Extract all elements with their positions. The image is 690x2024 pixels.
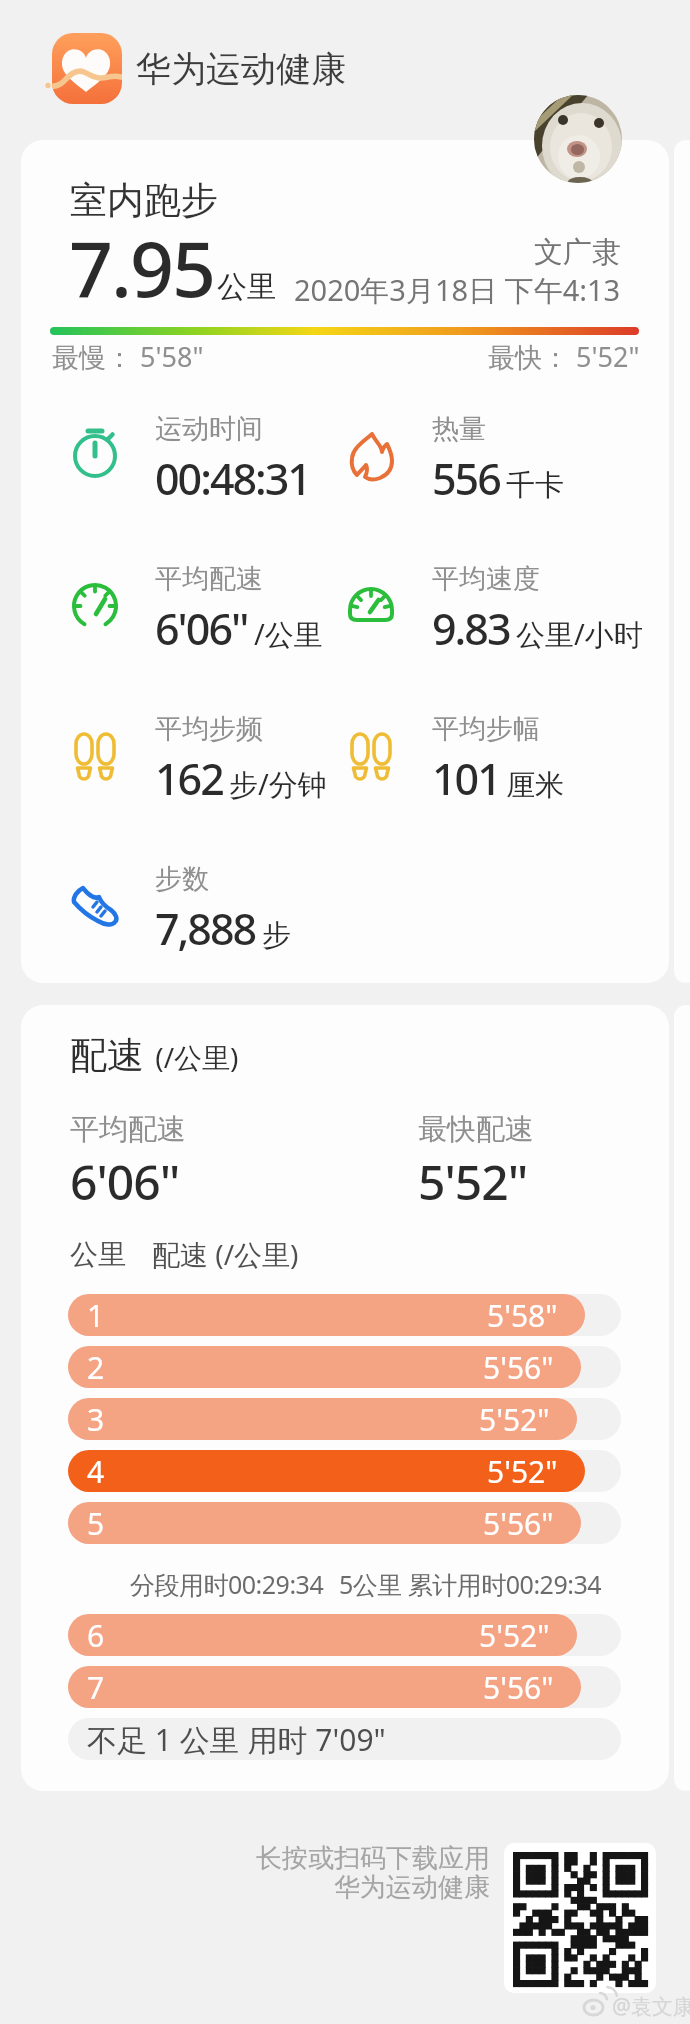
staticText: 配速 bbox=[70, 1032, 144, 1078]
staticText: 平均配速 bbox=[155, 562, 263, 596]
staticText: 最快： 5'52" bbox=[488, 338, 640, 375]
staticText: 5'52" bbox=[418, 1149, 528, 1214]
staticText: 5'58" bbox=[487, 1295, 558, 1336]
staticText: 6 bbox=[87, 1615, 105, 1656]
staticText: 平均配速 bbox=[70, 1111, 186, 1148]
staticText: 2 bbox=[87, 1347, 105, 1388]
button[interactable] bbox=[68, 1718, 621, 1760]
staticText: 平均速度 bbox=[432, 562, 540, 596]
staticText: 华为运动健康 bbox=[334, 1871, 490, 1904]
staticText: 公里/小时 bbox=[516, 614, 643, 654]
staticText: 公里 bbox=[70, 1237, 126, 1272]
button[interactable]: 5'52" bbox=[68, 1450, 585, 1492]
staticText: 室内跑步 bbox=[70, 177, 218, 224]
staticText: 5'56" bbox=[483, 1503, 554, 1544]
staticText: 平均步幅 bbox=[432, 712, 540, 746]
staticText: 厘米 bbox=[506, 767, 564, 804]
staticText: 最慢： 5'58" bbox=[52, 338, 204, 375]
staticText: 5'56" bbox=[483, 1667, 554, 1708]
staticText: 556 bbox=[432, 449, 500, 508]
staticText: 最快配速 bbox=[418, 1111, 534, 1148]
staticText: 分段用时00:29:34 bbox=[130, 1567, 324, 1601]
staticText: 步/分钟 bbox=[229, 764, 327, 804]
staticText: 3 bbox=[87, 1399, 105, 1440]
staticText: 配速 (/公里) bbox=[152, 1235, 299, 1273]
button[interactable]: 5'56" bbox=[68, 1502, 581, 1544]
staticText: 2020年3月18日 下午4:13 bbox=[294, 270, 621, 310]
button[interactable]: 5'52" bbox=[68, 1614, 577, 1656]
button[interactable] bbox=[534, 95, 622, 183]
staticText: 文广隶 bbox=[534, 234, 621, 271]
staticText: 华为运动健康 bbox=[136, 47, 346, 91]
staticText: 6'06" bbox=[155, 599, 248, 658]
staticText: 不足 1 公里 用时 7'09" bbox=[87, 1719, 386, 1760]
staticText: 5'52" bbox=[479, 1399, 550, 1440]
button[interactable]: 5'52" bbox=[68, 1398, 577, 1440]
staticText: @袁文康 bbox=[612, 1992, 690, 2021]
staticText: 千卡 bbox=[506, 467, 564, 504]
staticText: 5'52" bbox=[487, 1451, 558, 1492]
staticText: 162 bbox=[155, 749, 223, 808]
staticText: 运动时间 bbox=[155, 412, 263, 446]
staticText: 5 bbox=[87, 1503, 105, 1544]
staticText: 长按或扫码下载应用 bbox=[256, 1842, 490, 1875]
staticText: 4 bbox=[87, 1451, 105, 1492]
staticText: 平均步频 bbox=[155, 712, 263, 746]
staticText: 步数 bbox=[155, 862, 209, 896]
staticText: 热量 bbox=[432, 412, 486, 446]
staticText: 步 bbox=[262, 917, 291, 954]
staticText: /公里 bbox=[254, 614, 323, 654]
staticText: (/公里) bbox=[148, 1038, 239, 1076]
staticText: 5公里 累计用时00:29:34 bbox=[339, 1567, 602, 1601]
staticText: 101 bbox=[432, 749, 500, 808]
button[interactable]: 5'58" bbox=[68, 1294, 585, 1336]
staticText: 1 bbox=[87, 1295, 105, 1336]
staticText: 公里 bbox=[217, 268, 277, 306]
staticText: 7.95 bbox=[69, 215, 215, 315]
staticText: 5'52" bbox=[479, 1615, 550, 1656]
staticText: 7,888 bbox=[155, 899, 256, 958]
staticText: 6'06" bbox=[70, 1149, 180, 1214]
staticText: 7 bbox=[87, 1667, 105, 1708]
button[interactable]: 5'56" bbox=[68, 1666, 581, 1708]
staticText: 00:48:31 bbox=[155, 449, 310, 508]
button[interactable] bbox=[52, 33, 122, 103]
button[interactable]: 5'56" bbox=[68, 1346, 581, 1388]
staticText: 9.83 bbox=[432, 599, 510, 658]
button[interactable] bbox=[504, 1843, 656, 1993]
staticText: 5'56" bbox=[483, 1347, 554, 1388]
